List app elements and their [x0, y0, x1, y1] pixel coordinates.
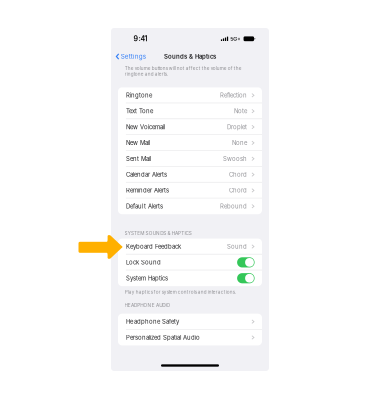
button[interactable]: Settings: [111, 51, 146, 62]
staticText: Droplet: [227, 123, 247, 131]
staticText: Sound: [227, 243, 247, 250]
button[interactable]: Sent Mail: [118, 151, 262, 167]
button[interactable]: New Mail: [118, 135, 262, 151]
staticText: Settings: [121, 53, 146, 60]
staticText: Default Alerts: [126, 203, 163, 210]
staticText: 5G+: [230, 36, 240, 42]
staticText: Chord: [229, 187, 247, 194]
button[interactable]: New Voicemail: [118, 119, 262, 135]
staticText: Play haptics for system controls and int…: [125, 289, 236, 295]
button[interactable]: System Haptics: [118, 270, 262, 286]
staticText: HEADPHONE AUDIO: [125, 302, 171, 308]
staticText: Headphone Safety: [126, 318, 179, 325]
button[interactable]: Headphone Safety: [118, 314, 262, 329]
staticText: Keyboard Feedback: [126, 243, 181, 250]
button[interactable]: Keyboard Feedback: [118, 239, 262, 254]
staticText: None: [232, 139, 247, 146]
staticText: Sent Mail: [126, 155, 151, 162]
staticText: Lock Sound: [126, 259, 161, 266]
staticText: Swoosh: [223, 155, 247, 162]
staticText: 9:41: [133, 34, 147, 43]
button[interactable]: Lock Sound: [118, 254, 262, 270]
staticText: Personalized Spatial Audio: [126, 334, 200, 341]
staticText: SYSTEM SOUNDS & HAPTICS: [125, 231, 192, 236]
staticText: New Voicemail: [126, 123, 165, 131]
staticText: Calendar Alerts: [126, 171, 167, 178]
staticText: Reminder Alerts: [126, 187, 169, 194]
staticText: Ringtone: [126, 92, 152, 99]
staticText: The volume buttons will not affect the v…: [125, 66, 242, 77]
staticText: Chord: [229, 171, 247, 178]
button[interactable]: Reminder Alerts: [118, 182, 262, 198]
staticText: Sounds & Haptics: [164, 53, 216, 60]
staticText: Note: [234, 108, 247, 115]
staticText: Text Tone: [126, 108, 153, 115]
button[interactable]: Ringtone: [118, 87, 262, 103]
staticText: New Mail: [126, 139, 150, 146]
button[interactable]: Default Alerts: [118, 198, 262, 214]
staticText: System Haptics: [126, 275, 168, 282]
button[interactable]: Text Tone: [118, 103, 262, 119]
staticText: Rebound: [220, 203, 247, 210]
button[interactable]: Personalized Spatial Audio: [118, 330, 262, 345]
button[interactable]: Calendar Alerts: [118, 167, 262, 182]
staticText: Reflection: [220, 92, 247, 99]
